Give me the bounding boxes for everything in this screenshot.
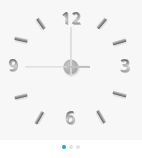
button[interactable]: Wall clock product photo bbox=[0, 0, 142, 140]
staticText: 3 bbox=[120, 54, 130, 77]
staticText: 9 bbox=[9, 54, 19, 77]
staticText: 12 bbox=[61, 7, 82, 29]
staticText: 12 bbox=[62, 8, 83, 30]
button[interactable]: Page 3 bbox=[76, 145, 80, 149]
staticText: 9 bbox=[8, 53, 18, 76]
button[interactable]: Page 2 bbox=[69, 145, 73, 149]
staticText: 6 bbox=[66, 107, 76, 130]
button[interactable]: Page 1 bbox=[62, 145, 66, 149]
staticText: 3 bbox=[121, 55, 131, 78]
staticText: 6 bbox=[65, 106, 75, 129]
